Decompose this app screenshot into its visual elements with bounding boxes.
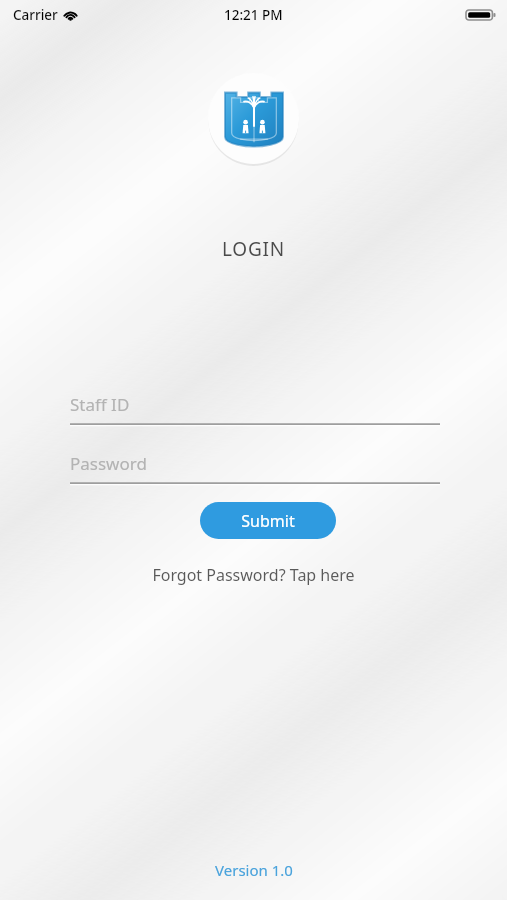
staticText: Staff ID — [70, 393, 130, 416]
button[interactable]: Version 1.0 — [0, 857, 507, 883]
button[interactable]: Submit — [200, 502, 336, 539]
staticText: Submit — [241, 510, 295, 532]
staticText: Carrier — [13, 6, 58, 24]
staticText: Forgot Password? Tap here — [152, 564, 355, 586]
button[interactable]: Forgot Password? Tap here — [0, 561, 507, 588]
staticText: LOGIN — [0, 236, 507, 262]
staticText: Password — [70, 452, 147, 475]
staticText: Version 1.0 — [215, 860, 293, 880]
button[interactable]: Password — [70, 452, 440, 485]
button[interactable]: Staff ID — [70, 393, 440, 426]
staticText: 12:21 PM — [224, 6, 283, 24]
